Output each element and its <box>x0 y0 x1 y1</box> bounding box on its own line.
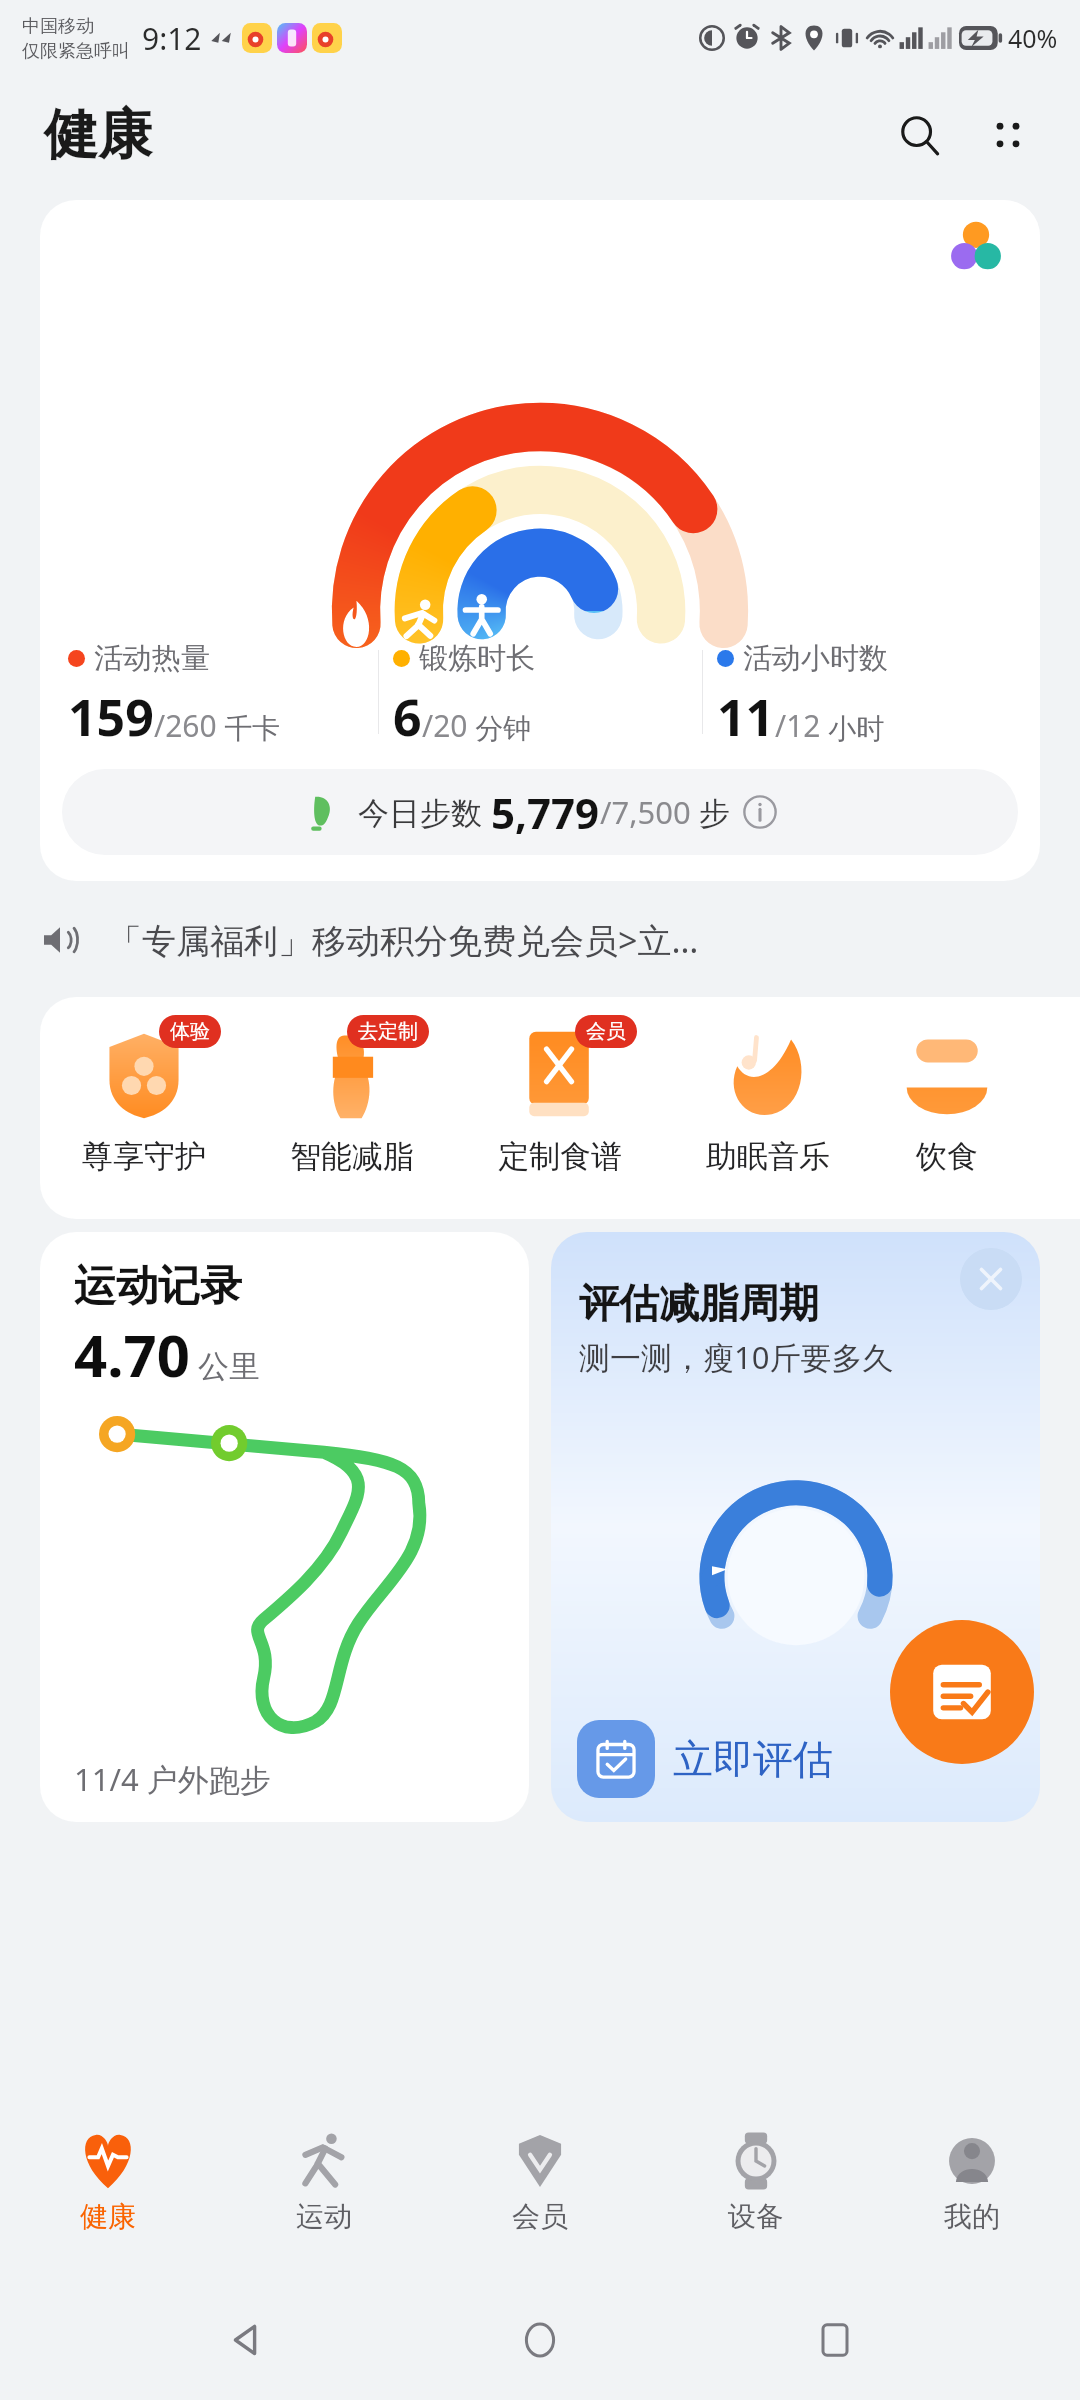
button[interactable]: Search <box>884 99 956 171</box>
button[interactable]: Health insight <box>40 200 1040 881</box>
button[interactable]: Recents <box>785 2290 885 2390</box>
staticText: 千卡 <box>217 708 281 746</box>
staticText: 6 <box>393 683 422 751</box>
button[interactable]: 我的 <box>864 2112 1080 2280</box>
staticText: 运动记录 <box>74 1260 242 1313</box>
staticText: 11 <box>717 683 775 751</box>
staticText: 测一测，瘦10斤要多久 <box>579 1336 894 1378</box>
button[interactable]: 健康 <box>0 2112 216 2280</box>
staticText: 智能减脂 <box>290 1137 414 1176</box>
staticText: 步 <box>691 791 731 833</box>
staticText: 立即评估 <box>673 1734 833 1784</box>
button[interactable]: More options <box>972 99 1044 171</box>
staticText: 公里 <box>190 1344 261 1386</box>
button[interactable]: 运动记录 <box>40 1232 529 1822</box>
button[interactable]: 设备 <box>648 2112 864 2280</box>
staticText: 定制食谱 <box>498 1137 622 1176</box>
staticText: 中国移动 <box>22 15 94 38</box>
button[interactable]: Health insight <box>912 200 1040 292</box>
staticText: 11/4 户外跑步 <box>74 1758 271 1800</box>
staticText: 助眠音乐 <box>706 1137 830 1176</box>
staticText: 体验 <box>170 1019 210 1044</box>
button[interactable]: 「专属福利」移动积分免费兑会员>立… <box>40 894 1040 986</box>
staticText: 去定制 <box>358 1019 418 1044</box>
staticText: 5,779 <box>491 784 600 841</box>
staticText: /7,500 <box>600 791 691 833</box>
staticText: 会员 <box>586 1019 626 1044</box>
staticText: 小时 <box>821 708 885 746</box>
staticText: 「专属福利」移动积分免费兑会员>立… <box>108 917 699 963</box>
staticText: 健康 <box>80 2199 136 2234</box>
staticText: 活动热量 <box>94 640 210 677</box>
button[interactable]: Back <box>195 2290 295 2390</box>
button[interactable]: Close <box>960 1248 1022 1310</box>
staticText: 尊享守护 <box>82 1137 206 1176</box>
button[interactable]: 饮食 <box>872 1019 1022 1219</box>
staticText: 设备 <box>728 2199 784 2234</box>
staticText: 今日步数 <box>358 791 491 833</box>
staticText: 评估减脂周期 <box>579 1278 819 1328</box>
staticText: /260 <box>154 705 217 746</box>
button[interactable]: Home <box>490 2290 590 2390</box>
button[interactable]: 去定制 <box>248 1019 456 1219</box>
staticText: 仅限紧急呼叫 <box>22 40 130 63</box>
staticText: 饮食 <box>916 1137 978 1176</box>
button[interactable]: 会员 <box>432 2112 648 2280</box>
staticText: 锻炼时长 <box>419 640 535 677</box>
button[interactable]: 体验 <box>40 1019 248 1219</box>
staticText: 9:12 <box>142 18 202 59</box>
staticText: 我的 <box>944 2199 1000 2234</box>
staticText: /12 <box>775 705 821 746</box>
staticText: /20 <box>422 705 468 746</box>
button[interactable]: 运动 <box>216 2112 432 2280</box>
staticText: 运动 <box>296 2199 352 2234</box>
button[interactable]: 助眠音乐 <box>664 1019 872 1219</box>
staticText: 活动小时数 <box>743 640 888 677</box>
staticText: 159 <box>68 683 154 751</box>
staticText: 4.70 <box>74 1315 190 1394</box>
button[interactable]: 评估减脂周期 <box>551 1232 1040 1822</box>
button[interactable]: Add record <box>890 1620 1034 1764</box>
button[interactable]: 会员 <box>456 1019 664 1219</box>
staticText: 分钟 <box>468 708 532 746</box>
staticText: 会员 <box>512 2199 568 2234</box>
staticText: 健康 <box>44 101 152 169</box>
button[interactable]: 今日步数 <box>62 769 1018 855</box>
staticText: 40% <box>1008 21 1058 55</box>
